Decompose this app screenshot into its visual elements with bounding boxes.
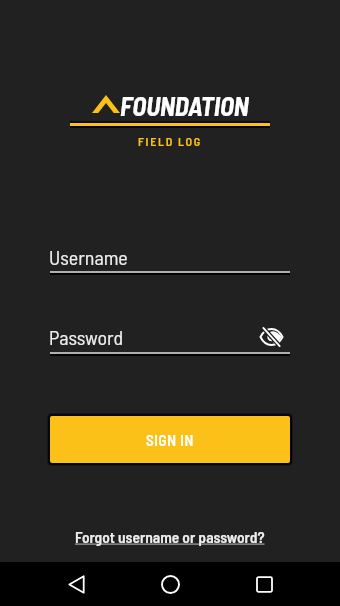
button[interactable]: Home — [150, 564, 190, 604]
staticText: FIELD LOG — [138, 134, 202, 148]
staticText: Username — [49, 245, 128, 269]
staticText: Forgot username or password? — [75, 527, 265, 546]
button[interactable]: Show password — [258, 324, 284, 350]
staticText: SIGN IN — [146, 431, 194, 449]
button[interactable]: SIGN IN — [50, 416, 290, 463]
staticText: Password — [49, 325, 124, 349]
button[interactable]: Recent apps — [244, 564, 284, 604]
staticText: FOUNDATION — [120, 90, 249, 121]
button[interactable]: Forgot username or password? — [75, 527, 265, 546]
button[interactable]: Back — [56, 564, 96, 604]
